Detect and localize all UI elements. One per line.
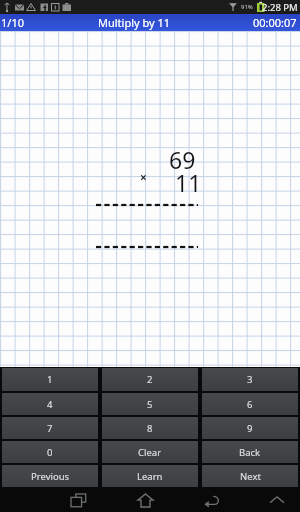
staticText: 5 xyxy=(147,398,153,411)
button[interactable]: 2 xyxy=(102,368,198,391)
staticText: 11 xyxy=(175,167,202,198)
button[interactable]: 5 xyxy=(102,393,198,415)
staticText: 2:28 PM xyxy=(262,1,298,14)
staticText: 4 xyxy=(47,398,53,411)
button[interactable]: Back xyxy=(202,441,298,463)
staticText: 2 xyxy=(147,373,153,386)
button[interactable]: Back xyxy=(194,488,228,512)
staticText: Back xyxy=(239,446,261,459)
staticText: 0 xyxy=(47,446,53,459)
staticText: 7 xyxy=(47,422,53,435)
button[interactable]: Hide keyboard xyxy=(260,488,294,512)
staticText: Clear xyxy=(138,446,162,459)
staticText: 6 xyxy=(247,398,253,411)
button[interactable]: 7 xyxy=(2,417,98,439)
staticText: 91% xyxy=(241,3,253,11)
button[interactable]: Learn xyxy=(102,465,198,487)
button[interactable]: 4 xyxy=(2,393,98,415)
button[interactable]: Clear xyxy=(102,441,198,463)
button[interactable]: Home xyxy=(128,488,162,512)
staticText: Next xyxy=(240,470,261,483)
staticText: Previous xyxy=(31,470,70,483)
staticText: 3 xyxy=(247,373,253,386)
staticText: × xyxy=(140,169,147,185)
button[interactable]: 8 xyxy=(102,417,198,439)
staticText: 00:00:07 xyxy=(253,15,297,30)
button[interactable]: Recent apps xyxy=(62,488,96,512)
staticText: 69 xyxy=(169,144,196,175)
staticText: 9 xyxy=(247,422,253,435)
staticText: 1 xyxy=(47,373,53,386)
button[interactable]: Next xyxy=(202,465,298,487)
button[interactable]: 0 xyxy=(2,441,98,463)
staticText: Multiply by 11 xyxy=(98,15,171,30)
button[interactable]: 6 xyxy=(202,393,298,415)
button[interactable]: 3 xyxy=(202,368,298,391)
staticText: 8 xyxy=(147,422,153,435)
button[interactable]: Previous xyxy=(2,465,98,487)
staticText: 1/10 xyxy=(1,15,24,30)
staticText: Learn xyxy=(137,470,163,483)
button[interactable]: 1 xyxy=(2,368,98,391)
button[interactable]: 9 xyxy=(202,417,298,439)
